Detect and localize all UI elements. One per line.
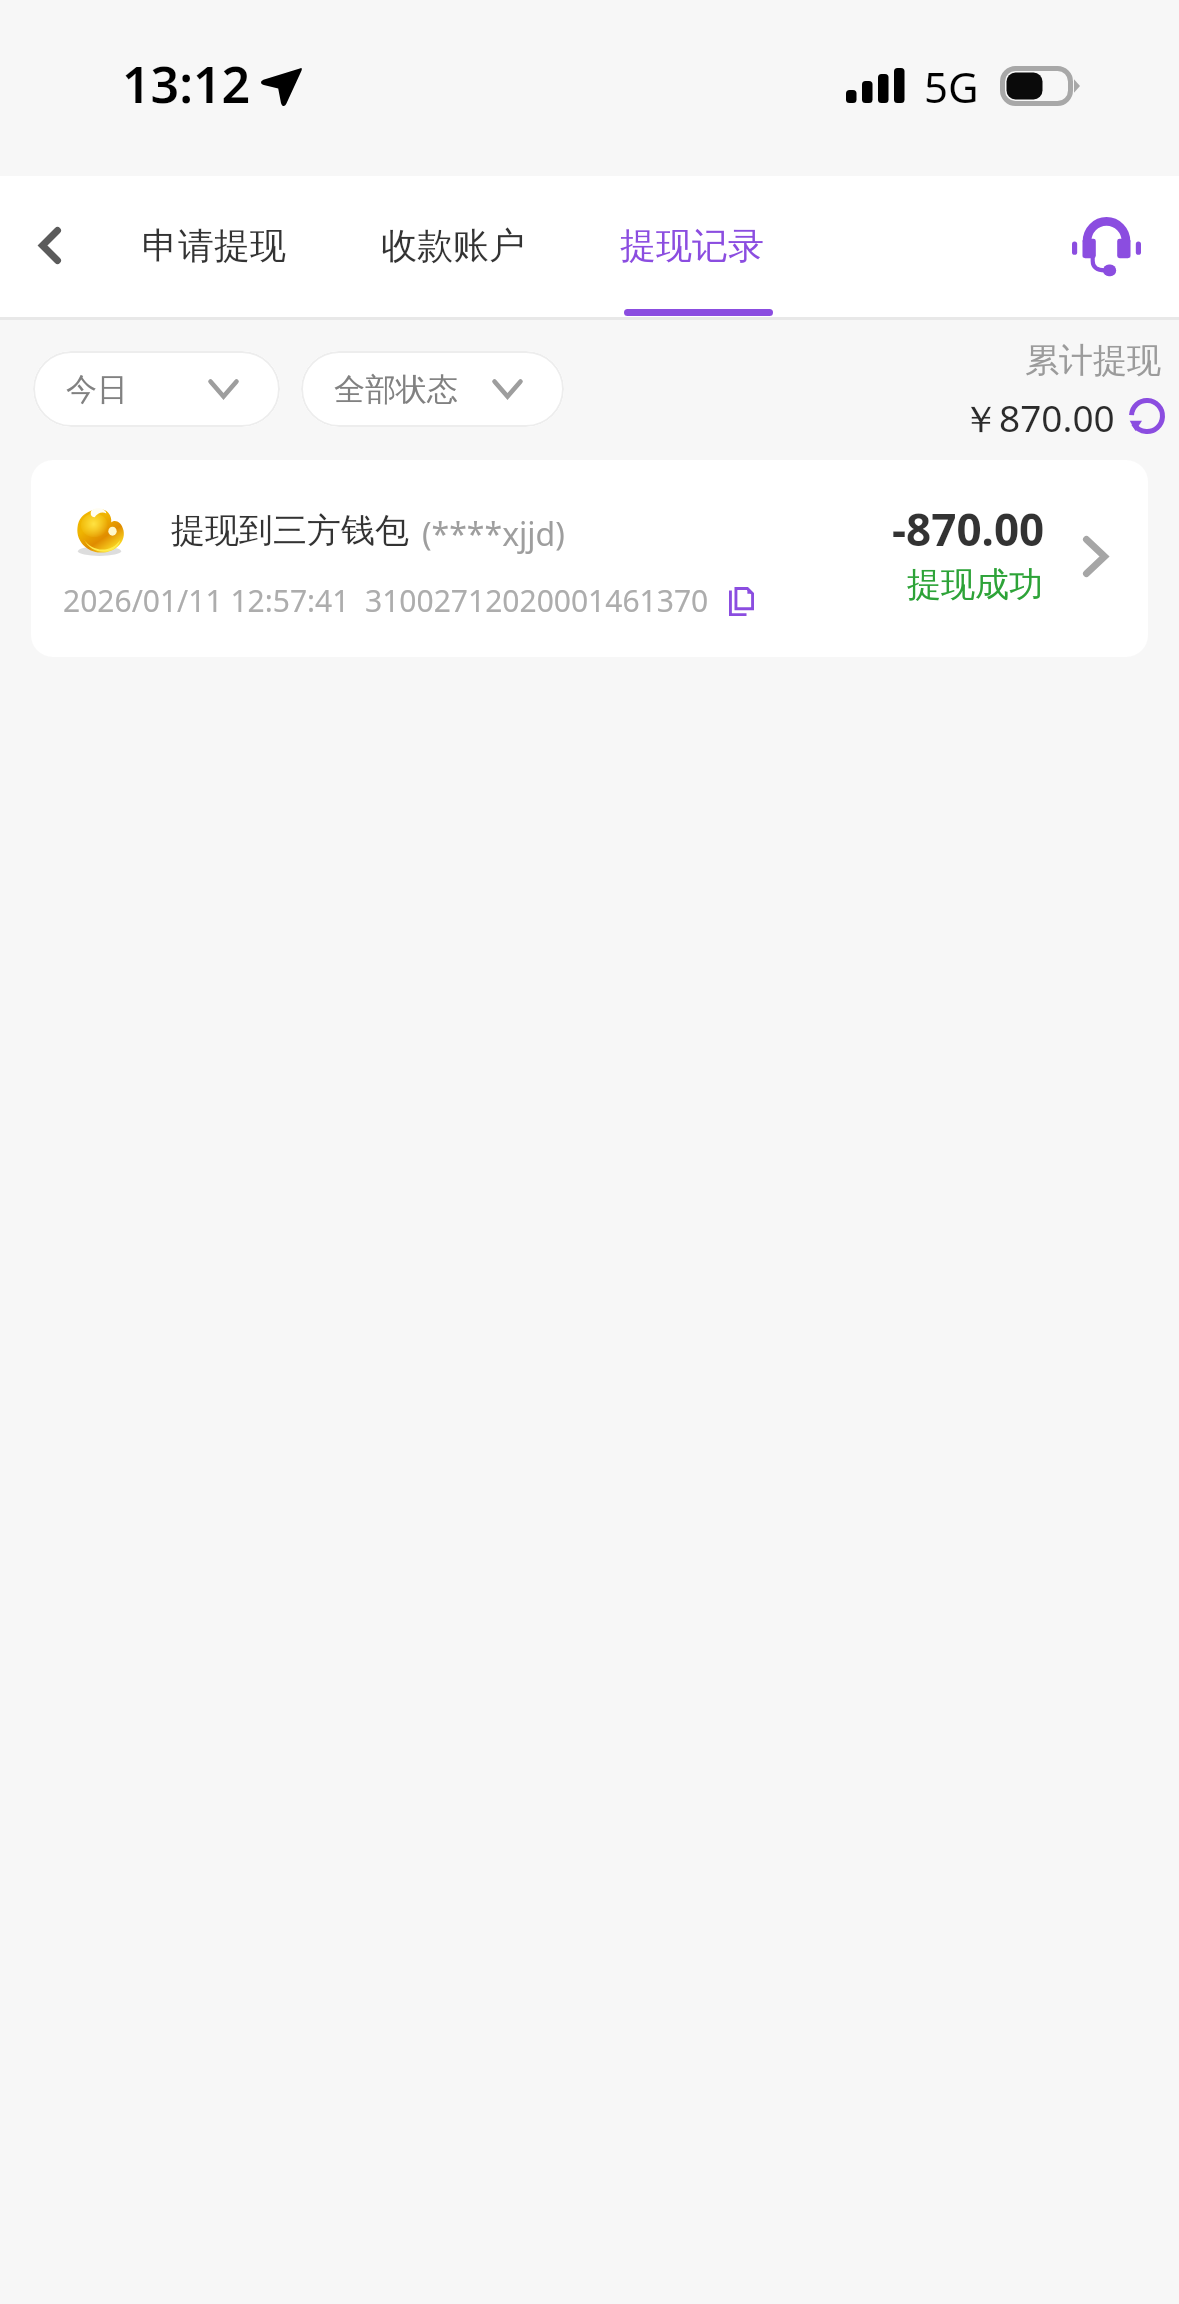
button[interactable]: 今日 [33,351,280,427]
staticText: 提现成功 [907,563,1043,606]
staticText: 5G [924,58,979,115]
button[interactable]: 收款账户 [358,190,548,300]
staticText: 收款账户 [381,223,525,268]
button[interactable]: 提现到三方钱包 [31,460,1148,657]
staticText: -870.00 [892,499,1045,559]
button[interactable]: Customer service [1057,176,1155,317]
staticText: 2026/01/11 12:57:41 31002712020001461370 [63,580,709,621]
button[interactable]: Refresh [1124,393,1170,439]
button[interactable]: 提现记录 [597,190,787,300]
staticText: 提现到三方钱包 [171,509,409,552]
button[interactable]: Back [0,176,100,317]
staticText: 累计提现 [1025,339,1161,382]
staticText: (****xjjd) [422,512,565,556]
staticText: 今日 [66,370,128,409]
staticText: 提现记录 [620,223,764,268]
staticText: 申请提现 [142,223,286,268]
button[interactable]: 全部状态 [301,351,564,427]
button[interactable]: Copy [714,574,768,628]
staticText: ￥870.00 [962,392,1115,443]
button[interactable]: 申请提现 [119,190,309,300]
staticText: 13:12 [122,50,251,118]
staticText: 全部状态 [334,370,458,409]
